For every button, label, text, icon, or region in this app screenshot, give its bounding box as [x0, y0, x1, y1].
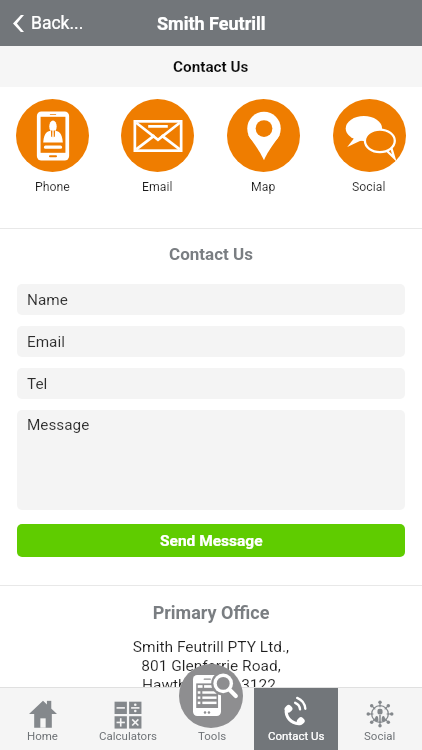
- staticText: Name: [27, 291, 68, 309]
- button[interactable]: Name: [17, 284, 405, 315]
- staticText: Social: [364, 729, 396, 742]
- staticText: Calculators: [99, 729, 157, 742]
- staticText: Tel: [27, 375, 48, 393]
- staticText: Back...: [31, 13, 84, 34]
- staticText: Contact Us: [0, 244, 422, 264]
- staticText: Message: [27, 416, 90, 434]
- staticText: Contact Us: [173, 58, 249, 76]
- button[interactable]: Tools: [179, 664, 243, 728]
- staticText: Smith Feutrill: [157, 13, 266, 34]
- button[interactable]: Phone: [0, 87, 105, 194]
- staticText: Tools: [198, 729, 227, 742]
- button[interactable]: Home: [0, 688, 85, 750]
- button[interactable]: Email: [17, 326, 405, 357]
- staticText: Smith Feutrill PTY Ltd., 801 Glenferrie …: [0, 638, 422, 694]
- staticText: Phone: [35, 180, 70, 194]
- button[interactable]: Social: [338, 688, 422, 750]
- staticText: Primary Office: [0, 602, 422, 623]
- button[interactable]: Send Message: [17, 524, 405, 557]
- staticText: Map: [251, 180, 276, 194]
- button[interactable]: Tel: [17, 368, 405, 399]
- button[interactable]: Back...: [0, 6, 98, 41]
- staticText: Contact Us: [268, 729, 325, 742]
- button[interactable]: Message: [17, 410, 405, 510]
- staticText: Send Message: [160, 532, 263, 550]
- button[interactable]: Social: [316, 87, 422, 194]
- staticText: Email: [142, 180, 173, 194]
- staticText: Social: [352, 180, 386, 194]
- staticText: Home: [27, 729, 58, 742]
- button[interactable]: Tools: [170, 688, 254, 750]
- button[interactable]: Contact Us: [254, 688, 338, 750]
- staticText: Email: [27, 333, 65, 351]
- button[interactable]: Map: [210, 87, 316, 194]
- button[interactable]: Calculators: [85, 688, 170, 750]
- button[interactable]: Email: [105, 87, 210, 194]
